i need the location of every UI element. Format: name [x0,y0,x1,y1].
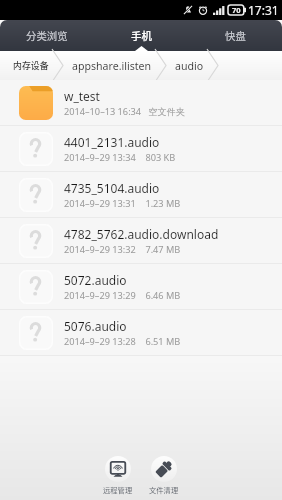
button[interactable]: 4782_5762.audio.download [0,218,282,264]
staticText: 4735_5104.audio [64,180,160,196]
staticText: 4401_2131.audio [64,134,160,150]
staticText: 5072.audio [64,272,127,288]
staticText: 文件清理 [149,485,179,496]
button[interactable]: 快盘 [188,20,282,51]
staticText: 快盘 [225,28,246,43]
button[interactable]: w_test [0,80,282,126]
staticText: 2014–9–29 13:29 6.46 MB [64,289,181,302]
staticText: 手机 [131,28,152,43]
staticText: 内存设备 [13,59,49,72]
staticText: 2014–10–13 16:34 空文件夹 [64,105,186,118]
button[interactable]: 5076.audio [0,310,282,356]
button[interactable]: audio [166,51,218,80]
staticText: audio [175,59,204,73]
staticText: appshare.ilisten [72,59,152,73]
button[interactable]: 4735_5104.audio [0,172,282,218]
staticText: 70 [232,5,241,15]
staticText: 2014–9–29 13:31 1.23 MB [64,197,181,210]
staticText: 17:31 [248,2,279,18]
staticText: 2014–9–29 13:28 6.51 MB [64,335,181,348]
staticText: 分类浏览 [26,28,68,43]
staticText: w_test [64,88,100,104]
other: File cleanup [156,461,172,477]
button[interactable]: appshare.ilisten [63,51,166,80]
button[interactable]: 分类浏览 [0,20,94,51]
other: Remote management [110,461,126,477]
button[interactable]: 内存设备 [0,51,63,80]
button[interactable]: File cleanup [149,452,179,496]
button[interactable]: 手机 [94,20,188,51]
staticText: 2014–9–29 13:34 803 KB [64,151,176,164]
button[interactable]: Remote management [103,452,133,496]
button[interactable]: 5072.audio [0,264,282,310]
staticText: 2014–9–29 13:32 7.47 MB [64,243,181,256]
staticText: 远程管理 [103,485,133,496]
staticText: 4782_5762.audio.download [64,226,219,242]
staticText: 5076.audio [64,318,127,334]
button[interactable]: 4401_2131.audio [0,126,282,172]
